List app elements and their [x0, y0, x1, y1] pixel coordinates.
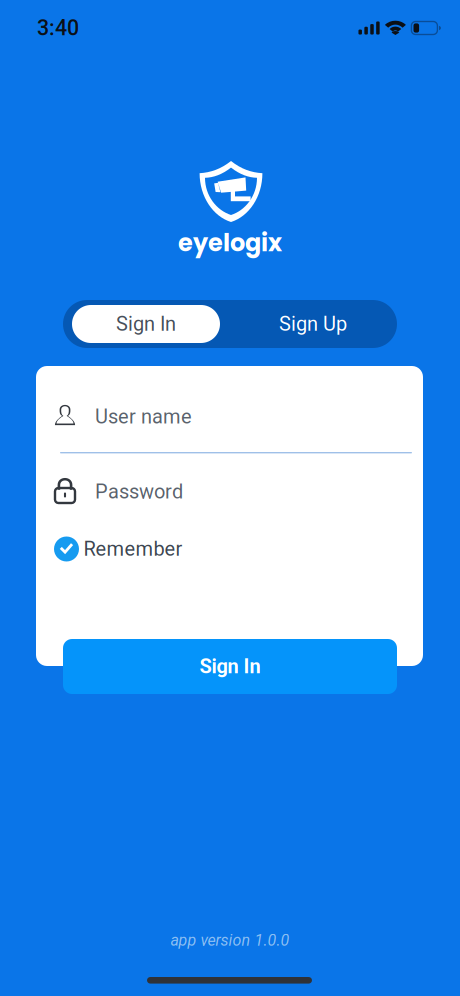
staticText: Remember [83, 537, 182, 561]
staticText: eyelogix [178, 226, 282, 260]
button[interactable]: Sign In [63, 639, 397, 694]
button[interactable]: Sign In [72, 305, 220, 343]
staticText: User name [95, 405, 192, 428]
staticText: Sign In [199, 655, 260, 678]
button[interactable]: Sign Up [239, 305, 387, 343]
staticText: Sign Up [279, 312, 347, 336]
staticText: Sign In [116, 312, 176, 336]
staticText: app version 1.0.0 [170, 931, 289, 950]
staticText: Password [95, 480, 183, 503]
staticText: 3:40 [37, 15, 79, 40]
button[interactable]: Remember [49, 531, 187, 566]
